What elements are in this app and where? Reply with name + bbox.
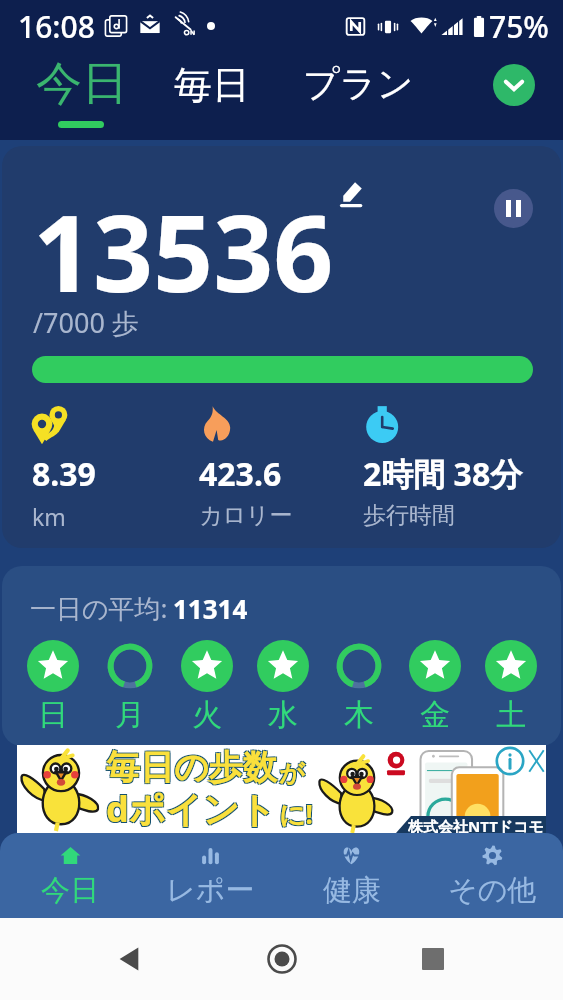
button[interactable]: 健康 — [281, 833, 422, 918]
staticText: 8.39 — [32, 452, 96, 496]
staticText: 今日 — [36, 55, 128, 113]
staticText: に! — [280, 795, 314, 831]
staticText: 毎日 — [174, 61, 250, 109]
button[interactable]: Close ad — [527, 746, 546, 776]
staticText: 水 — [268, 696, 298, 734]
staticText: 今日 — [41, 872, 99, 909]
button[interactable]: 月 — [91, 640, 168, 734]
button[interactable]: プラン — [303, 52, 414, 140]
button[interactable]: Back — [108, 937, 152, 981]
staticText: 75% — [489, 6, 549, 47]
button[interactable]: 毎日 — [174, 52, 250, 140]
staticText: 月 — [115, 696, 145, 734]
staticText: 日 — [38, 696, 68, 734]
staticText: 毎日の歩数 — [105, 747, 276, 790]
staticText: dポイント — [106, 784, 277, 833]
staticText: その他 — [448, 872, 537, 909]
button[interactable]: Edit step goal — [336, 180, 364, 208]
staticText: に! — [278, 795, 312, 831]
staticText: が — [278, 759, 304, 790]
button[interactable]: Expand — [493, 64, 535, 106]
staticText: 株式会社NTTドコモ — [408, 816, 544, 833]
staticText: 毎日の歩数 — [105, 745, 276, 788]
staticText: km — [32, 501, 66, 532]
button[interactable]: Recent apps — [411, 937, 455, 981]
staticText: 歩行時間 — [363, 501, 455, 530]
button[interactable]: 火 — [168, 640, 245, 734]
staticText: 金 — [420, 696, 450, 734]
button[interactable]: 今日 — [0, 833, 140, 918]
staticText: プラン — [303, 61, 414, 106]
button[interactable]: 日 — [14, 640, 91, 734]
staticText: が — [280, 759, 306, 790]
staticText: に! — [279, 796, 313, 832]
button[interactable]: Pause step tracking — [494, 189, 533, 228]
staticText: に! — [280, 797, 314, 833]
staticText: 火 — [192, 696, 222, 734]
staticText: が — [279, 758, 305, 789]
button[interactable]: Home — [260, 937, 304, 981]
staticText: dポイント — [107, 785, 278, 833]
staticText: 毎日の歩数 — [107, 745, 278, 788]
staticText: が — [280, 757, 306, 788]
staticText: dポイント — [105, 783, 276, 832]
button[interactable]: 水 — [245, 640, 321, 734]
staticText: dポイント — [107, 783, 278, 832]
staticText: /7000 歩 — [33, 304, 139, 341]
staticText: dポイント — [105, 785, 276, 833]
button[interactable]: 今日 — [36, 52, 128, 140]
staticText: 13536 — [33, 180, 334, 323]
staticText: が — [278, 757, 304, 788]
button[interactable]: 木 — [321, 640, 397, 734]
staticText: 423.6 — [199, 452, 282, 496]
staticText: 16:08 — [18, 6, 95, 47]
staticText: 2時間 38分 — [363, 452, 523, 496]
button[interactable]: レポー — [140, 833, 281, 918]
staticText: に! — [278, 797, 312, 833]
staticText: 一日の平均: — [30, 590, 168, 626]
staticText: 毎日の歩数 — [106, 746, 277, 789]
button[interactable]: 土 — [473, 640, 549, 734]
staticText: 土 — [496, 696, 526, 734]
button[interactable]: 金 — [397, 640, 473, 734]
staticText: 木 — [344, 696, 374, 734]
staticText: 健康 — [323, 872, 381, 909]
staticText: カロリー — [199, 501, 293, 530]
staticText: 11314 — [173, 591, 248, 626]
staticText: レポー — [166, 872, 255, 909]
button[interactable]: Ad information — [495, 746, 525, 776]
staticText: 毎日の歩数 — [107, 747, 278, 790]
button[interactable]: Advertisement: earn d-points for daily s… — [17, 745, 546, 833]
button[interactable]: その他 — [422, 833, 563, 918]
